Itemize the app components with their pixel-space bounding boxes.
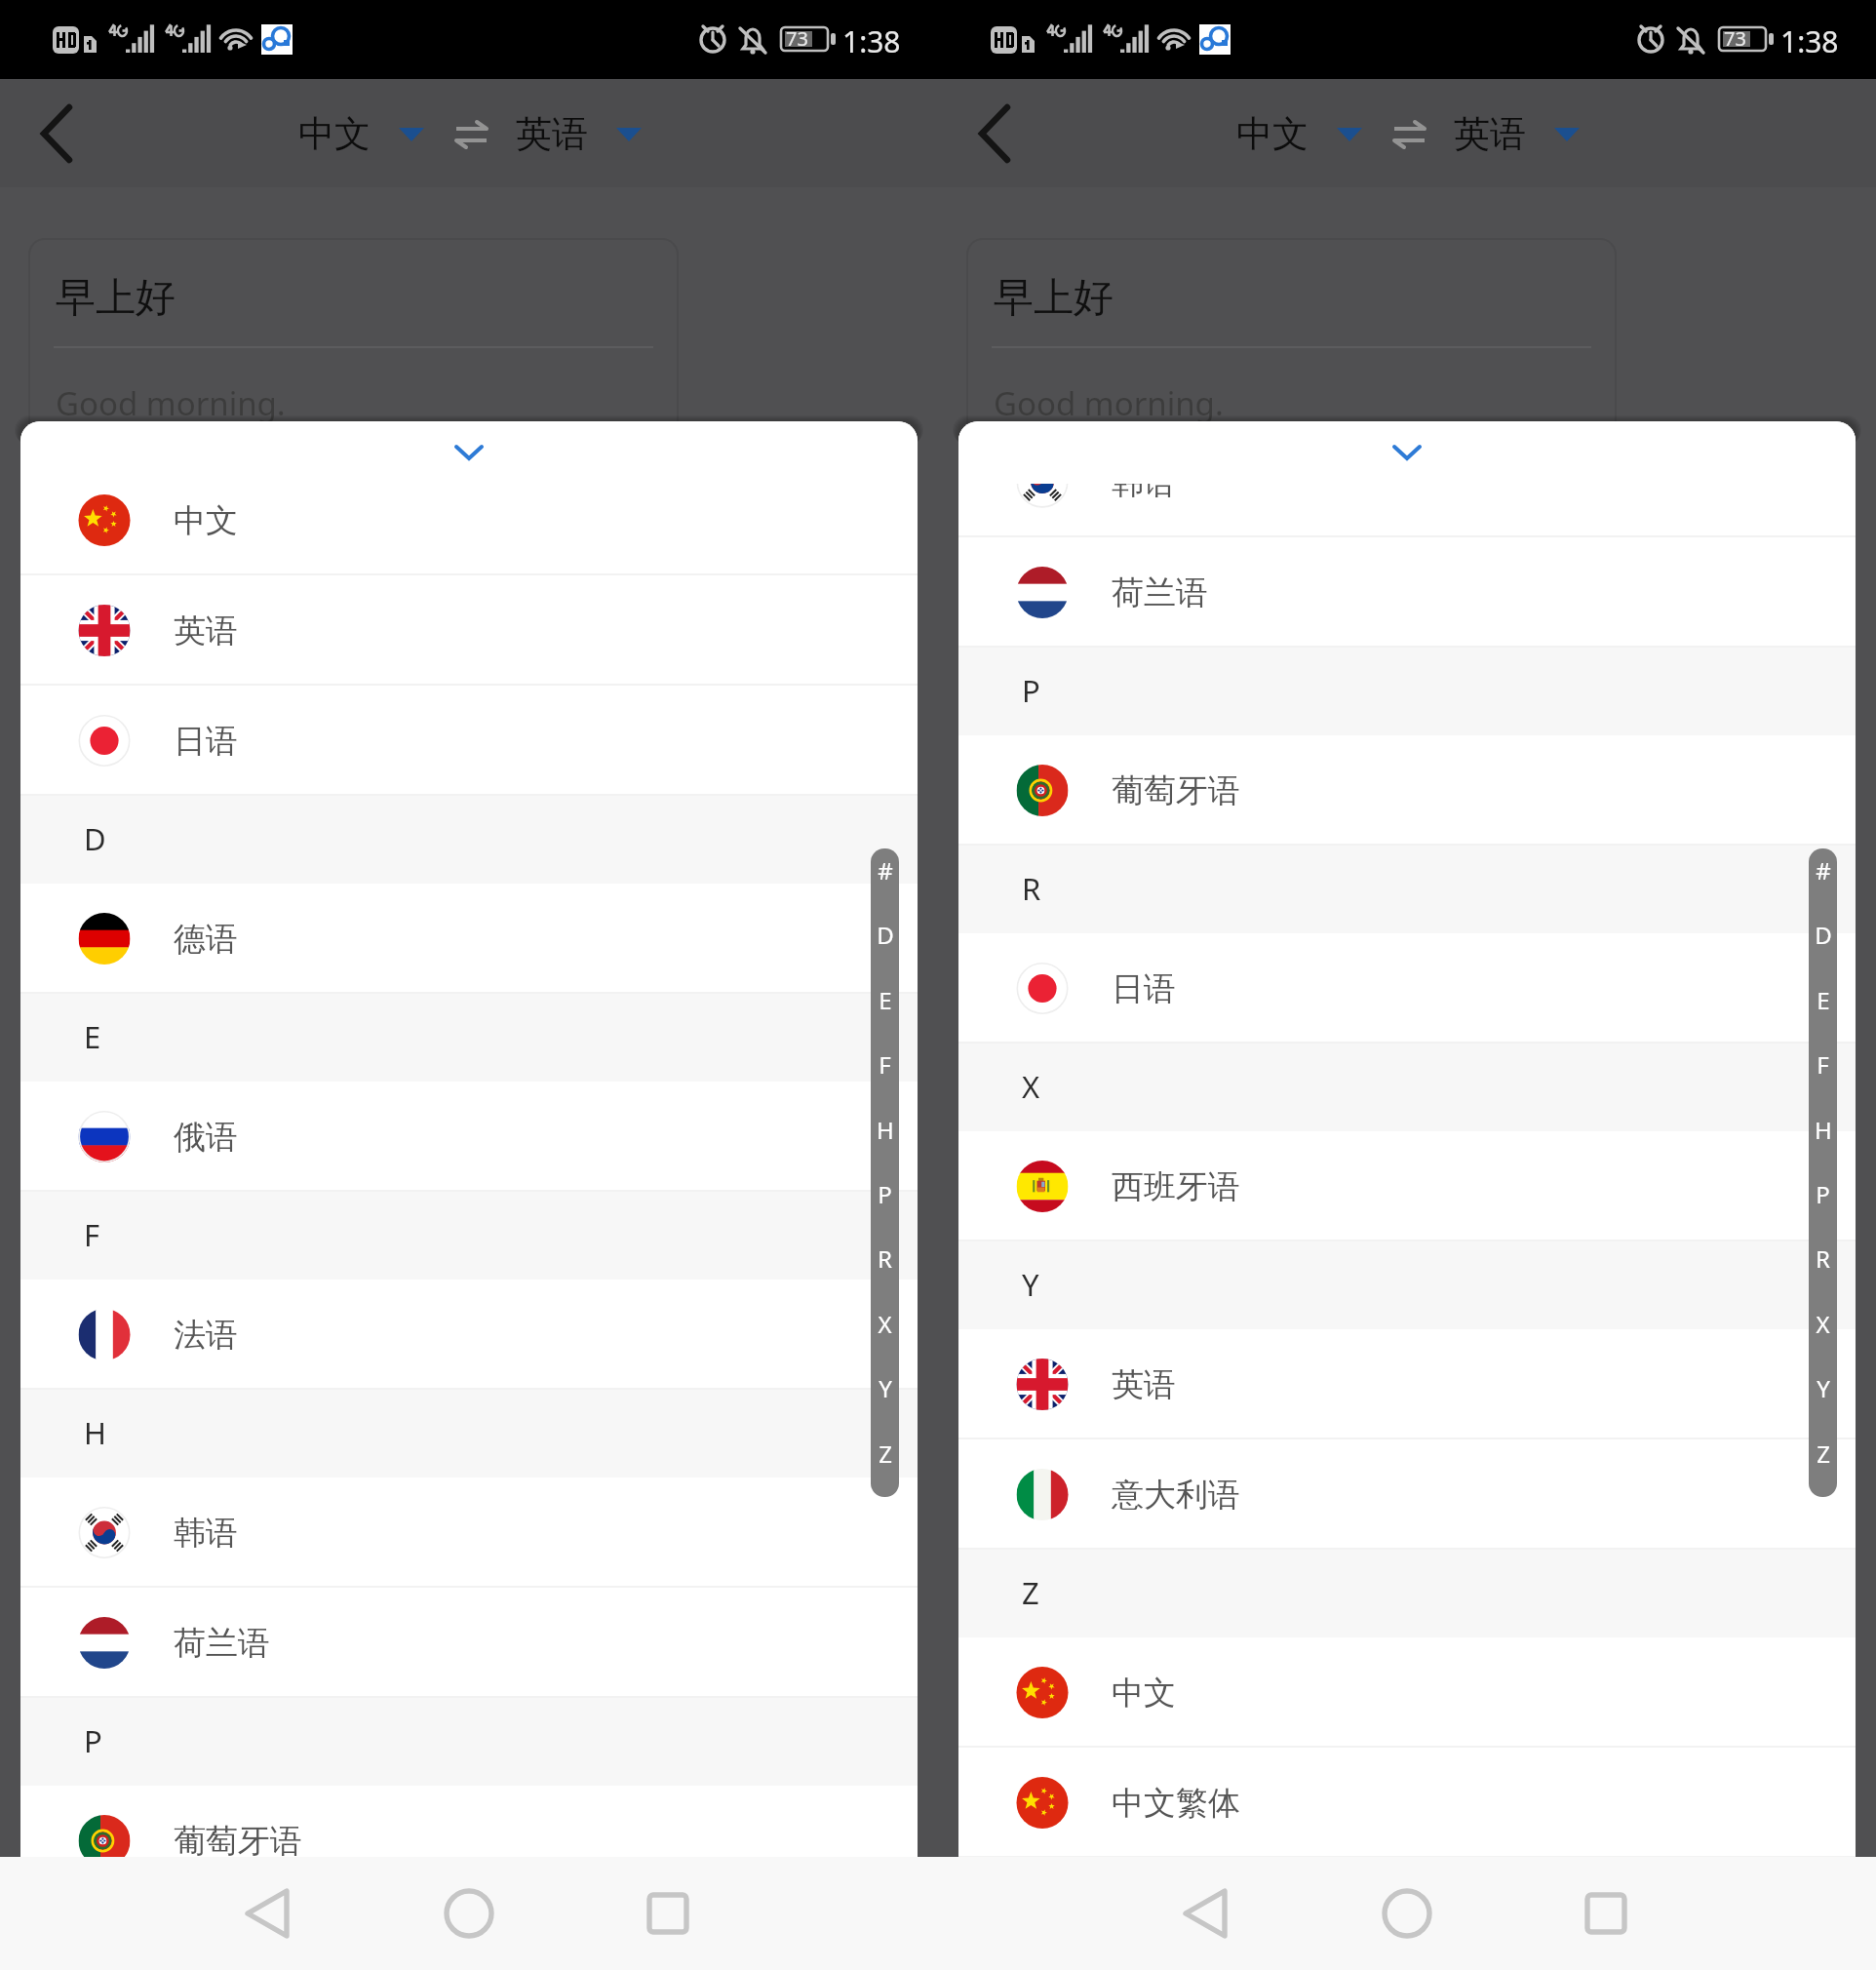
staticText: Z (1022, 1572, 1039, 1613)
button[interactable]: 中文 (298, 111, 424, 157)
staticText: 73 (1724, 25, 1746, 52)
staticText: Y (1022, 1264, 1039, 1305)
staticText: Good morning. (56, 381, 286, 425)
staticText: E (879, 984, 892, 1016)
staticText: 日语 (174, 721, 238, 762)
button[interactable]: 中文 (958, 1637, 1856, 1748)
button[interactable]: 中文繁体 (958, 1748, 1856, 1857)
button[interactable]: Recents (1567, 1874, 1645, 1952)
staticText: F (84, 1214, 100, 1255)
staticText: 1:38 (1780, 21, 1839, 61)
staticText: 韩语 (1112, 482, 1176, 503)
staticText: X (1816, 1308, 1830, 1340)
button[interactable]: 葡萄牙语 (20, 1786, 918, 1857)
staticText: X (1022, 1066, 1040, 1107)
button[interactable]: 俄语 (20, 1082, 918, 1192)
staticText: # (1816, 854, 1831, 886)
staticText: 英语 (174, 611, 238, 651)
button[interactable]: Back (18, 95, 96, 173)
staticText: H (1815, 1114, 1832, 1146)
button[interactable]: 法语 (20, 1280, 918, 1390)
staticText: 德语 (174, 919, 238, 960)
button[interactable]: Home (1368, 1874, 1446, 1952)
button[interactable]: Swap languages (1393, 120, 1426, 149)
staticText: Good morning. (994, 381, 1224, 425)
staticText: 葡萄牙语 (1112, 770, 1240, 811)
button[interactable]: 中文 (1236, 111, 1362, 157)
button[interactable]: 意大利语 (958, 1439, 1856, 1550)
staticText: 73 (786, 25, 808, 52)
button[interactable]: Back (1166, 1874, 1244, 1952)
staticText: P (878, 1178, 892, 1210)
staticText: Z (1817, 1438, 1830, 1470)
staticText: D (877, 919, 894, 951)
button[interactable]: Back (956, 95, 1034, 173)
button[interactable]: Collapse (958, 421, 1856, 484)
button[interactable]: 中文 (20, 465, 918, 575)
staticText: 中文 (174, 500, 238, 541)
staticText: 中文 (298, 111, 371, 157)
button[interactable]: 英语 (516, 111, 642, 157)
button[interactable]: Swap languages (455, 120, 488, 149)
staticText: E (84, 1016, 101, 1057)
staticText: 英语 (1454, 111, 1526, 157)
staticText: X (878, 1308, 892, 1340)
staticText: 荷兰语 (1112, 572, 1208, 613)
staticText: F (879, 1048, 891, 1081)
button[interactable]: 荷兰语 (958, 537, 1856, 648)
staticText: 荷兰语 (174, 1623, 270, 1664)
staticText: 俄语 (174, 1117, 238, 1158)
staticText: P (1816, 1178, 1830, 1210)
button[interactable]: Home (430, 1874, 508, 1952)
staticText: 日语 (1112, 968, 1176, 1009)
button[interactable]: 葡萄牙语 (958, 735, 1856, 846)
staticText: 葡萄牙语 (174, 1821, 302, 1857)
button[interactable]: 韩语 (958, 427, 1856, 537)
staticText: # (878, 854, 893, 886)
button[interactable]: 早上好 (29, 239, 678, 551)
staticText: P (84, 1720, 102, 1761)
staticText: Y (879, 1372, 892, 1404)
button[interactable]: 英语 (958, 1329, 1856, 1439)
button[interactable]: Alphabet index (1809, 848, 1837, 1497)
staticText: Z (879, 1438, 892, 1470)
button[interactable]: 英语 (20, 575, 918, 686)
button[interactable]: 西班牙语 (958, 1131, 1856, 1241)
staticText: 1:38 (842, 21, 901, 61)
staticText: 早上好 (56, 273, 176, 324)
staticText: 西班牙语 (1112, 1166, 1240, 1207)
staticText: R (878, 1242, 892, 1275)
staticText: 韩语 (174, 1513, 238, 1554)
button[interactable]: 日语 (958, 933, 1856, 1044)
staticText: D (1815, 919, 1832, 951)
staticText: 英语 (516, 111, 588, 157)
button[interactable]: 德语 (20, 884, 918, 994)
button[interactable]: 英语 (1454, 111, 1580, 157)
staticText: R (1816, 1242, 1830, 1275)
staticText: 法语 (174, 1315, 238, 1356)
button[interactable]: 早上好 (967, 239, 1616, 551)
staticText: Y (1817, 1372, 1830, 1404)
staticText: D (84, 818, 106, 859)
staticText: 中文 (1236, 111, 1309, 157)
staticText: 中文繁体 (1112, 1783, 1240, 1824)
staticText: E (1817, 984, 1830, 1016)
staticText: R (1022, 868, 1041, 909)
staticText: H (877, 1114, 894, 1146)
staticText: P (1022, 670, 1040, 711)
staticText: 中文 (1112, 1673, 1176, 1714)
button[interactable]: 荷兰语 (20, 1588, 918, 1698)
button[interactable]: 韩语 (20, 1477, 918, 1588)
staticText: 早上好 (994, 273, 1114, 324)
staticText: 英语 (1112, 1364, 1176, 1405)
button[interactable]: Alphabet index (871, 848, 899, 1497)
button[interactable]: 日语 (20, 686, 918, 796)
button[interactable]: Collapse (20, 421, 918, 484)
staticText: 意大利语 (1112, 1475, 1240, 1516)
button[interactable]: Recents (629, 1874, 707, 1952)
button[interactable]: Back (228, 1874, 306, 1952)
staticText: H (84, 1412, 106, 1453)
staticText: F (1817, 1048, 1829, 1081)
